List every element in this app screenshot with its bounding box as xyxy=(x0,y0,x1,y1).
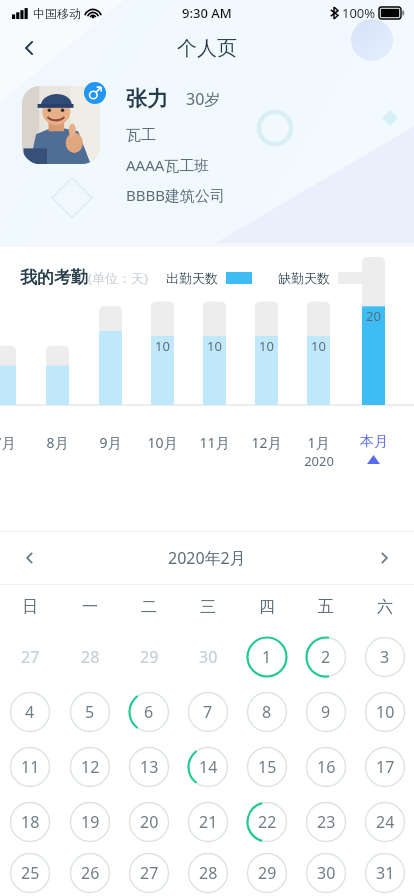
button[interactable]: 15 xyxy=(246,746,288,788)
staticText: AAAA瓦工班 xyxy=(126,155,210,175)
staticText: 2020 xyxy=(304,452,334,470)
staticText: 三 xyxy=(200,597,216,617)
button[interactable]: 27 xyxy=(9,636,51,678)
staticText: 31 xyxy=(376,862,395,884)
staticText: 8 xyxy=(262,701,272,723)
staticText: 四 xyxy=(259,597,275,617)
staticText: 二 xyxy=(141,597,157,617)
button[interactable]: 26 xyxy=(69,852,111,894)
staticText: 18 xyxy=(21,811,40,833)
button[interactable]: 2 xyxy=(305,636,347,678)
staticText: 7月 xyxy=(0,433,16,452)
staticText: 瓦工 xyxy=(126,126,156,145)
staticText: 30岁 xyxy=(186,88,221,110)
staticText: 2020年2月 xyxy=(168,547,246,569)
button[interactable]: 12 xyxy=(69,746,111,788)
staticText: 29 xyxy=(140,646,159,668)
button[interactable]: 28 xyxy=(187,852,229,894)
staticText: 一 xyxy=(82,597,98,617)
button[interactable]: 6 xyxy=(128,691,170,733)
staticText: 26 xyxy=(81,862,100,884)
button[interactable]: 3 xyxy=(364,636,406,678)
staticText: 20 xyxy=(366,307,381,325)
staticText: 11月 xyxy=(199,433,230,452)
staticText: 1月 xyxy=(307,433,330,452)
button[interactable]: 29 xyxy=(128,636,170,678)
staticText: 29 xyxy=(258,862,277,884)
button[interactable]: 14 xyxy=(187,746,229,788)
staticText: (单位：天) xyxy=(88,269,148,287)
button[interactable]: 31 xyxy=(364,852,406,894)
staticText: 27 xyxy=(140,862,159,884)
button[interactable]: 24 xyxy=(364,801,406,843)
staticText: 11 xyxy=(21,756,40,778)
button[interactable]: 7 xyxy=(187,691,229,733)
button[interactable]: 16 xyxy=(305,746,347,788)
button[interactable]: 21 xyxy=(187,801,229,843)
staticText: 出勤天数 xyxy=(166,270,218,286)
staticText: 10 xyxy=(311,337,326,355)
button[interactable]: 8 xyxy=(246,691,288,733)
staticText: 中国移动 xyxy=(33,6,81,21)
button[interactable]: 28 xyxy=(69,636,111,678)
staticText: 20 xyxy=(140,811,159,833)
staticText: 3 xyxy=(380,646,390,668)
button[interactable]: 29 xyxy=(246,852,288,894)
staticText: 10 xyxy=(259,337,274,355)
staticText: 100% xyxy=(342,4,376,22)
staticText: 12 xyxy=(81,756,100,778)
staticText: 8月 xyxy=(46,433,69,452)
button[interactable]: 18 xyxy=(9,801,51,843)
staticText: 12月 xyxy=(251,433,282,452)
staticText: 日 xyxy=(22,597,38,617)
button[interactable]: 10 xyxy=(364,691,406,733)
button[interactable]: 23 xyxy=(305,801,347,843)
staticText: 27 xyxy=(21,646,40,668)
staticText: 21 xyxy=(199,811,218,833)
staticText: 24 xyxy=(376,811,395,833)
staticText: 缺勤天数 xyxy=(278,270,330,286)
button[interactable]: 17 xyxy=(364,746,406,788)
button[interactable]: Previous month xyxy=(8,536,52,580)
button[interactable]: 1 xyxy=(246,636,288,678)
staticText: 10月 xyxy=(147,433,178,452)
button[interactable]: 5 xyxy=(69,691,111,733)
button[interactable]: 20 xyxy=(128,801,170,843)
staticText: 2 xyxy=(321,646,331,668)
staticText: 10 xyxy=(207,337,222,355)
button[interactable]: Next month xyxy=(362,536,406,580)
staticText: 25 xyxy=(21,862,40,884)
staticText: 五 xyxy=(318,597,334,617)
button[interactable]: 9 xyxy=(305,691,347,733)
staticText: 我的考勤 xyxy=(20,267,88,288)
button[interactable]: 27 xyxy=(128,852,170,894)
staticText: 28 xyxy=(81,646,100,668)
staticText: 13 xyxy=(140,756,159,778)
button[interactable]: 30 xyxy=(305,852,347,894)
button[interactable]: 30 xyxy=(187,636,229,678)
staticText: 14 xyxy=(199,756,218,778)
staticText: 19 xyxy=(81,811,100,833)
staticText: 5 xyxy=(85,701,95,723)
button[interactable]: 4 xyxy=(9,691,51,733)
button[interactable]: 11 xyxy=(9,746,51,788)
staticText: 4 xyxy=(25,701,35,723)
staticText: 6 xyxy=(144,701,154,723)
staticText: 30 xyxy=(317,862,336,884)
staticText: 本月 xyxy=(360,433,388,451)
staticText: 22 xyxy=(258,811,277,833)
button[interactable]: Back xyxy=(8,26,52,70)
staticText: 28 xyxy=(199,862,218,884)
staticText: 30 xyxy=(199,646,218,668)
staticText: 17 xyxy=(376,756,395,778)
staticText: 23 xyxy=(317,811,336,833)
button[interactable]: 13 xyxy=(128,746,170,788)
button[interactable]: 25 xyxy=(9,852,51,894)
staticText: 六 xyxy=(377,597,393,617)
staticText: 16 xyxy=(317,756,336,778)
staticText: 7 xyxy=(203,701,213,723)
staticText: 9:30 AM xyxy=(182,4,232,22)
button[interactable]: 19 xyxy=(69,801,111,843)
button[interactable]: 22 xyxy=(246,801,288,843)
staticText: 10 xyxy=(155,337,170,355)
